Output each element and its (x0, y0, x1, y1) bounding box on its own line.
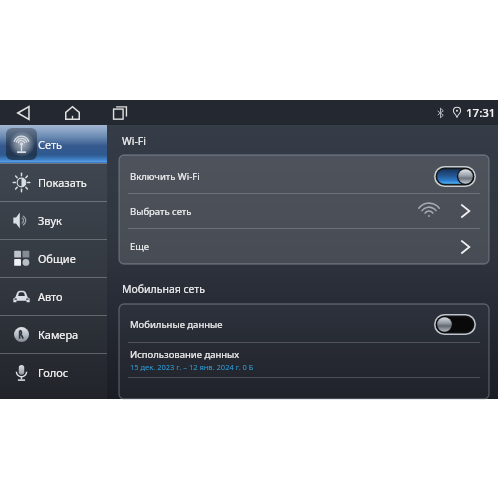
staticText: Голос (38, 365, 69, 380)
staticText: Использование данных (130, 348, 240, 361)
button[interactable]: Голос (0, 353, 107, 391)
staticText: Общие (38, 251, 76, 266)
staticText: Мобильные данные (130, 318, 223, 331)
staticText: Включить Wi-Fi (130, 170, 200, 183)
button[interactable]: Общие (0, 239, 107, 277)
button[interactable]: Home (43, 100, 102, 125)
button[interactable]: Авто (0, 277, 107, 315)
button[interactable]: Использование данных (119, 343, 489, 377)
staticText: 17:31 (466, 105, 496, 121)
staticText: Камера (38, 327, 79, 342)
button[interactable]: Back (3, 100, 43, 125)
button[interactable]: Recent apps (102, 100, 137, 125)
button[interactable]: Мобильные данные (119, 304, 489, 342)
staticText: Wi-Fi (122, 134, 147, 148)
button[interactable]: Еще (119, 229, 489, 264)
button[interactable]: Wi-Fi enabled (434, 166, 476, 187)
button[interactable]: Камера (0, 315, 107, 353)
button[interactable]: Показать (0, 163, 107, 201)
staticText: Мобильная сеть (122, 282, 205, 296)
button[interactable]: Сеть (0, 125, 107, 163)
staticText: 15 дек. 2023 г. – 12 янв. 2024 г. 0 Б (130, 362, 254, 372)
button[interactable]: Mobile data disabled (434, 314, 476, 335)
staticText: Показать (38, 175, 87, 190)
button[interactable]: Включить Wi-Fi (119, 155, 489, 193)
button[interactable]: Звук (0, 201, 107, 239)
staticText: Звук (38, 213, 62, 228)
staticText: Выбрать сеть (130, 205, 192, 218)
staticText: Еще (130, 240, 150, 253)
button[interactable]: Выбрать сеть (119, 194, 489, 228)
staticText: Авто (38, 289, 63, 304)
button[interactable] (119, 378, 489, 399)
staticText: Сеть (38, 137, 63, 152)
